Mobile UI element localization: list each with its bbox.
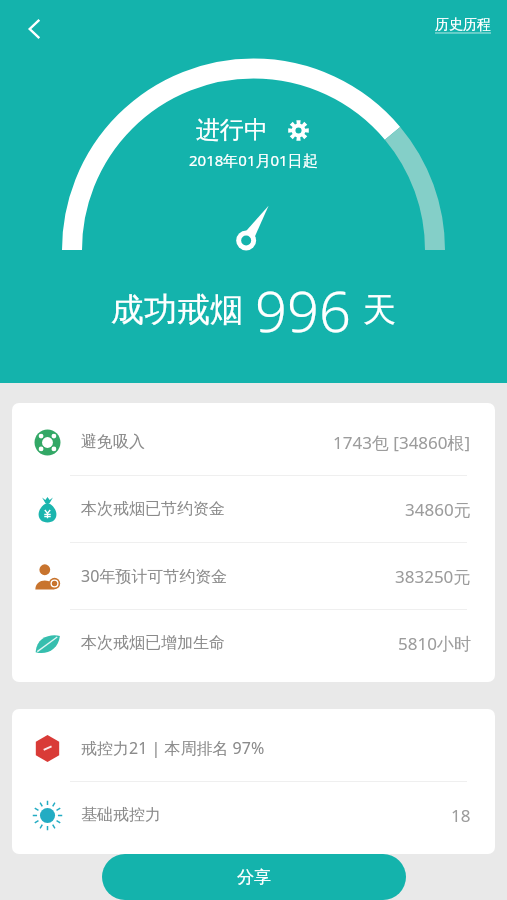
button[interactable]: 基础戒控力: [12, 782, 495, 848]
staticText: 383250元: [395, 565, 471, 588]
button[interactable]: 分享: [102, 854, 406, 900]
button[interactable]: 本次戒烟已节约资金: [12, 476, 495, 542]
staticText: 5810小时: [398, 632, 471, 655]
staticText: 30年预计可节约资金: [81, 565, 228, 587]
staticText: 本次戒烟已增加生命: [81, 633, 225, 653]
staticText: 成功戒烟: [111, 289, 243, 331]
button[interactable]: 本次戒烟已增加生命: [12, 610, 495, 676]
button[interactable]: 戒控力21 | 本周排名 97%: [12, 715, 495, 781]
staticText: 34860元: [405, 498, 471, 521]
staticText: 分享: [237, 867, 271, 888]
staticText: 996: [255, 272, 351, 348]
staticText: 历史历程: [435, 16, 491, 34]
button[interactable]: 避免吸入: [12, 409, 495, 475]
staticText: 基础戒控力: [81, 805, 161, 825]
button[interactable]: Settings: [284, 116, 312, 144]
staticText: 进行中: [196, 115, 268, 145]
button[interactable]: 30年预计可节约资金: [12, 543, 495, 609]
staticText: 2018年01月01日起: [189, 150, 318, 170]
staticText: 避免吸入: [81, 432, 145, 452]
staticText: 本次戒烟已节约资金: [81, 499, 225, 519]
staticText: 18: [451, 804, 471, 827]
staticText: 1743包 [34860根]: [333, 431, 471, 454]
staticText: 戒控力21 | 本周排名 97%: [81, 737, 265, 759]
staticText: 天: [363, 289, 396, 331]
button[interactable]: Back: [12, 6, 58, 52]
button[interactable]: 历史历程: [427, 8, 499, 42]
